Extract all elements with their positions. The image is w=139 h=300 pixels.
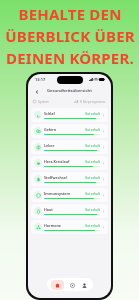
- staticText: Gut erholt: [85, 144, 100, 148]
- staticText: Immunsystem: [44, 191, 70, 196]
- staticText: Gut erholt: [85, 112, 100, 116]
- button[interactable]: Gehirn: [31, 124, 108, 138]
- staticText: BEHALTE DEN: [18, 4, 122, 24]
- staticText: ÜBERBLICK ÜBER: [5, 26, 135, 46]
- button[interactable]: Haut: [31, 204, 108, 218]
- staticText: Gut erholt: [85, 128, 100, 132]
- staticText: Gehirn: [44, 127, 57, 132]
- button[interactable]: Herz-Kreislauf: [31, 156, 108, 170]
- staticText: Gut erholt: [85, 192, 100, 196]
- staticText: Hormone: [44, 223, 61, 228]
- staticText: Leber: [44, 143, 55, 148]
- staticText: Stoffwechsel: [44, 175, 67, 180]
- staticText: 13:17: [35, 77, 46, 82]
- button[interactable]: Zurück: [32, 87, 41, 96]
- button[interactable]: Schlaf: [31, 108, 108, 122]
- staticText: Gut erholt: [85, 208, 100, 212]
- button[interactable]: Leber: [31, 140, 108, 154]
- staticText: DEINEN KÖRPER.: [6, 48, 134, 68]
- button[interactable]: Stoffwechsel: [31, 172, 108, 186]
- button[interactable]: Hormone: [31, 220, 108, 234]
- staticText: System: [38, 100, 49, 104]
- button[interactable]: Start: [51, 280, 64, 290]
- staticText: Herz-Kreislauf: [44, 159, 70, 164]
- staticText: Gesundheitsübersicht: [47, 88, 92, 94]
- staticText: Gut erholt: [85, 224, 100, 228]
- staticText: Gut erholt: [85, 160, 100, 164]
- staticText: Haut: [44, 207, 53, 212]
- button[interactable]: Statistik: [67, 280, 77, 290]
- staticText: Gut erholt: [85, 176, 100, 180]
- button[interactable]: Immunsystem: [31, 188, 108, 202]
- staticText: 8 Körpersysteme: [80, 100, 106, 104]
- staticText: Schlaf: [44, 111, 55, 116]
- button[interactable]: Profil: [79, 280, 89, 290]
